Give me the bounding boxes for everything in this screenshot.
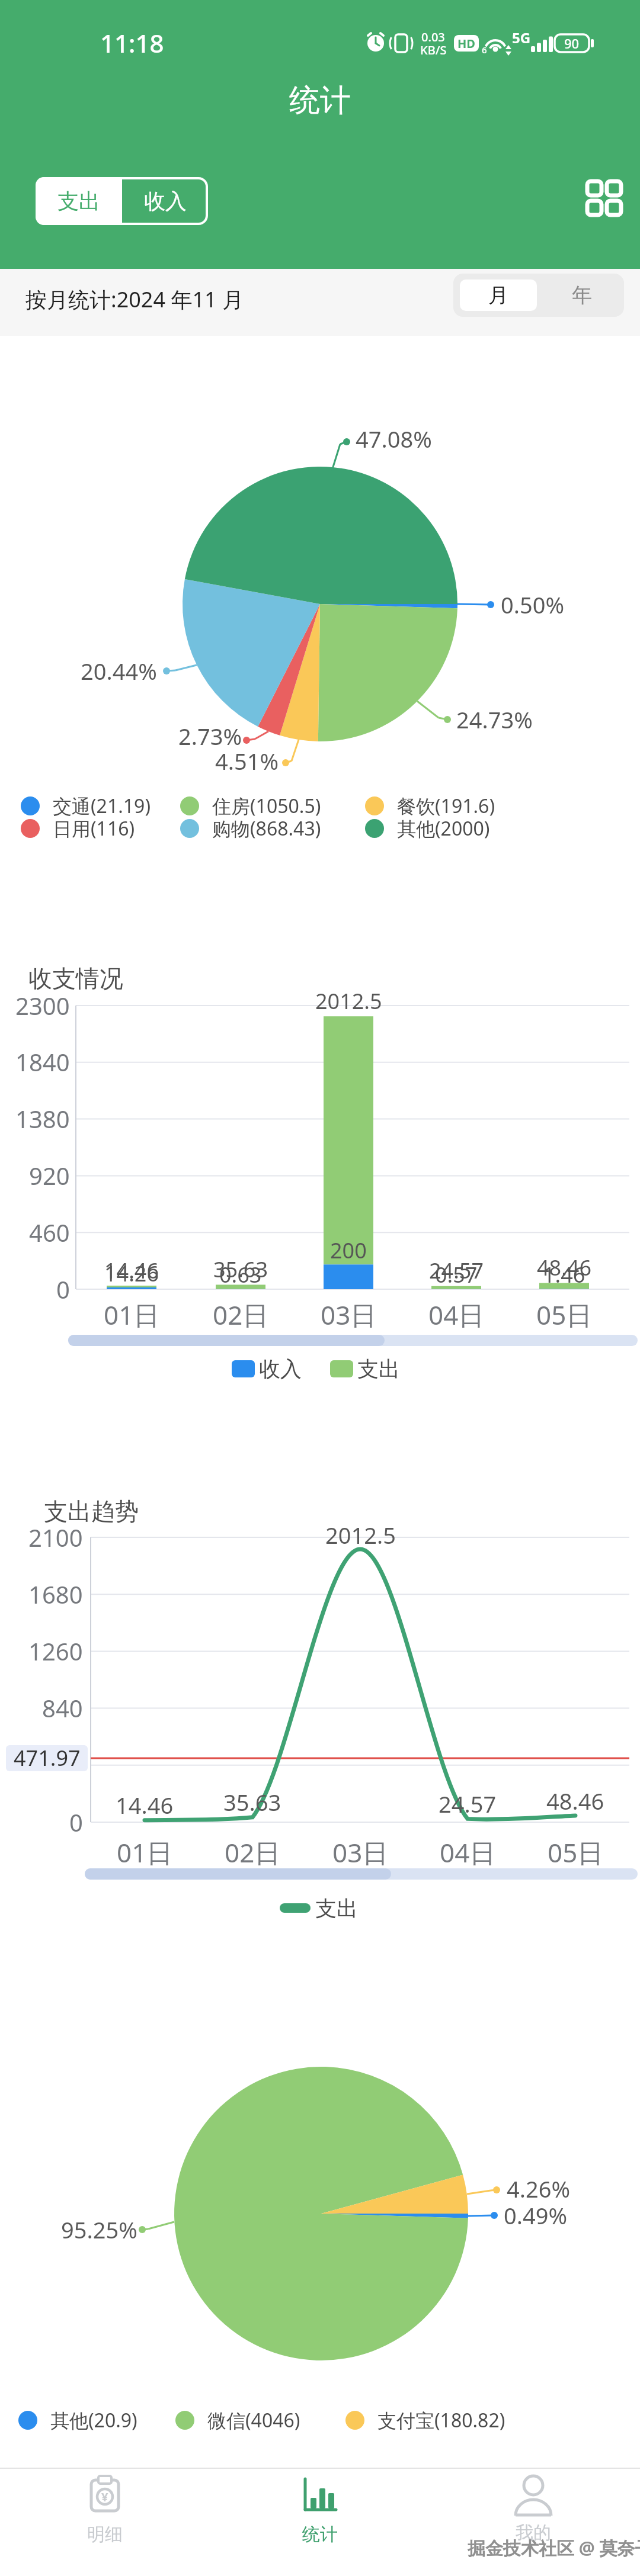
staticText: 2300 (15, 990, 70, 1022)
staticText: 920 (29, 1159, 70, 1191)
staticText: KB/S (420, 42, 447, 58)
staticText: 03日 (332, 1835, 389, 1870)
button[interactable] (462, 2469, 604, 2576)
staticText: 年 (572, 282, 592, 308)
button[interactable]: 支出 (36, 177, 122, 225)
staticText: 按月统计:2024 年11 月 (25, 285, 244, 314)
staticText: 14.46 (116, 1790, 174, 1820)
staticText: 2012.5 (325, 1520, 396, 1550)
staticText: 11:18 (100, 26, 164, 60)
staticText: 掘金技术社区 @ 莫奈子 (468, 2536, 640, 2560)
staticText: 明细 (87, 2523, 123, 2546)
staticText: 24.73% (456, 704, 533, 735)
staticText: 统计 (289, 81, 351, 120)
staticText: ¥ (101, 2489, 108, 2505)
staticText: 交通(21.19) (53, 793, 151, 819)
staticText: 微信(4046) (207, 2407, 300, 2433)
staticText: 住房(1050.5) (212, 793, 321, 819)
staticText: 其他(20.9) (50, 2407, 137, 2433)
staticText: 支付宝(180.82) (377, 2407, 505, 2433)
staticText: 购物(868.43) (212, 815, 321, 841)
staticText: 04日 (440, 1835, 496, 1870)
staticText: 14.26 (104, 1259, 159, 1288)
staticText: 0.63 (219, 1260, 262, 1289)
staticText: 47.08% (356, 423, 432, 454)
staticText: 0.03 (421, 29, 445, 45)
staticText: 95.25% (61, 2214, 137, 2245)
staticText: 收支情况 (28, 963, 123, 993)
staticText: 0.49% (504, 2200, 567, 2231)
staticText: 统计 (302, 2523, 338, 2546)
staticText: 支出 (57, 188, 100, 214)
staticText: 01日 (104, 1297, 160, 1332)
button[interactable]: 月 (460, 280, 537, 311)
staticText: 4.26% (507, 2173, 570, 2204)
staticText: 其他(2000) (397, 815, 490, 841)
staticText: 0 (56, 1273, 70, 1305)
staticText: 1.46 (543, 1260, 585, 1289)
staticText: 收入 (259, 1356, 302, 1382)
staticText: 1680 (28, 1578, 83, 1610)
staticText: 0 (69, 1806, 83, 1838)
staticText: 04日 (428, 1297, 485, 1332)
staticText: 餐饮(191.6) (397, 793, 495, 819)
staticText: 收入 (144, 188, 187, 214)
staticText: 1840 (15, 1046, 70, 1078)
staticText: 35.63 (223, 1787, 281, 1817)
staticText: 35.63 (213, 1255, 268, 1284)
staticText: 2012.5 (315, 987, 382, 1016)
staticText: 460 (29, 1216, 70, 1248)
staticText: 24.57 (429, 1256, 484, 1285)
staticText: 支出 (357, 1356, 400, 1382)
staticText: 2.73% (178, 721, 242, 751)
staticText: 6 (482, 44, 487, 56)
staticText: 01日 (117, 1835, 173, 1870)
button[interactable]: 收入 (122, 177, 208, 225)
staticText: 14.46 (104, 1256, 159, 1285)
staticText: 200 (330, 1236, 367, 1265)
staticText: 日用(116) (53, 815, 135, 841)
staticText: 2100 (28, 1521, 83, 1553)
button[interactable] (249, 2469, 391, 2576)
staticText: 5G (512, 28, 531, 46)
staticText: 20.44% (81, 656, 157, 686)
staticText: 1380 (15, 1103, 70, 1135)
staticText: 24.57 (439, 1788, 497, 1819)
staticText: 840 (42, 1692, 83, 1724)
staticText: 90 (564, 34, 580, 52)
staticText: 02日 (225, 1835, 281, 1870)
button[interactable]: 年 (540, 274, 624, 317)
staticText: 支出趋势 (44, 1496, 139, 1526)
button[interactable] (36, 2469, 178, 2576)
staticText: HD (457, 36, 475, 52)
staticText: 05日 (548, 1835, 604, 1870)
staticText: 1260 (28, 1635, 83, 1667)
staticText: 03日 (321, 1297, 377, 1332)
staticText: 48.46 (546, 1785, 604, 1816)
staticText: 48.46 (537, 1253, 592, 1282)
staticText: 月 (488, 282, 508, 308)
staticText: 我的 (516, 2522, 551, 2544)
staticText: 0.57 (435, 1260, 478, 1289)
staticText: 471.97 (14, 1743, 81, 1772)
button[interactable] (584, 178, 625, 219)
staticText: 02日 (213, 1297, 269, 1332)
staticText: 0.50% (501, 589, 564, 620)
staticText: 05日 (536, 1297, 593, 1332)
staticText: 支出 (315, 1895, 358, 1922)
staticText: 4.51% (215, 746, 279, 776)
